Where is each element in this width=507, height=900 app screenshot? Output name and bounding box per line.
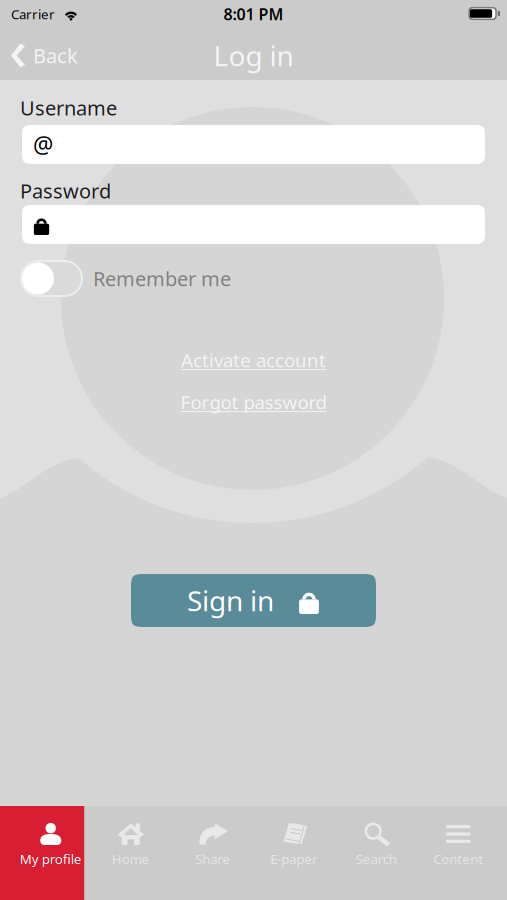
staticText: 8:01 PM	[223, 3, 283, 25]
button[interactable]: Back	[0, 31, 92, 80]
staticText: Content	[433, 850, 483, 868]
staticText: E-paper	[270, 850, 318, 868]
staticText: Username	[20, 94, 117, 121]
staticText: Log in	[213, 37, 293, 74]
staticText: Share	[195, 850, 230, 868]
button[interactable]: E-paper	[253, 806, 338, 900]
staticText: Sign in	[187, 582, 274, 619]
staticText: Remember me	[93, 265, 231, 292]
staticText: Activate account	[181, 348, 326, 372]
staticText: Search	[356, 850, 397, 868]
staticText: Back	[33, 42, 78, 69]
staticText: Forgot password	[180, 390, 326, 414]
staticText: My profile	[20, 850, 82, 868]
button[interactable]: Content	[422, 806, 507, 900]
button[interactable]: Sign in	[131, 574, 376, 627]
button[interactable]: Activate account	[181, 339, 326, 381]
staticText: Carrier	[11, 5, 55, 23]
button[interactable]: My profile	[0, 806, 84, 900]
button[interactable]: Remember me	[0, 244, 507, 313]
button[interactable]: Home	[84, 806, 169, 900]
button[interactable]: Search	[338, 806, 422, 900]
button[interactable]: Share	[169, 806, 253, 900]
button[interactable]: Forgot password	[180, 381, 326, 423]
staticText: Password	[20, 177, 111, 204]
staticText: @	[33, 129, 53, 159]
staticText: Home	[112, 850, 150, 868]
